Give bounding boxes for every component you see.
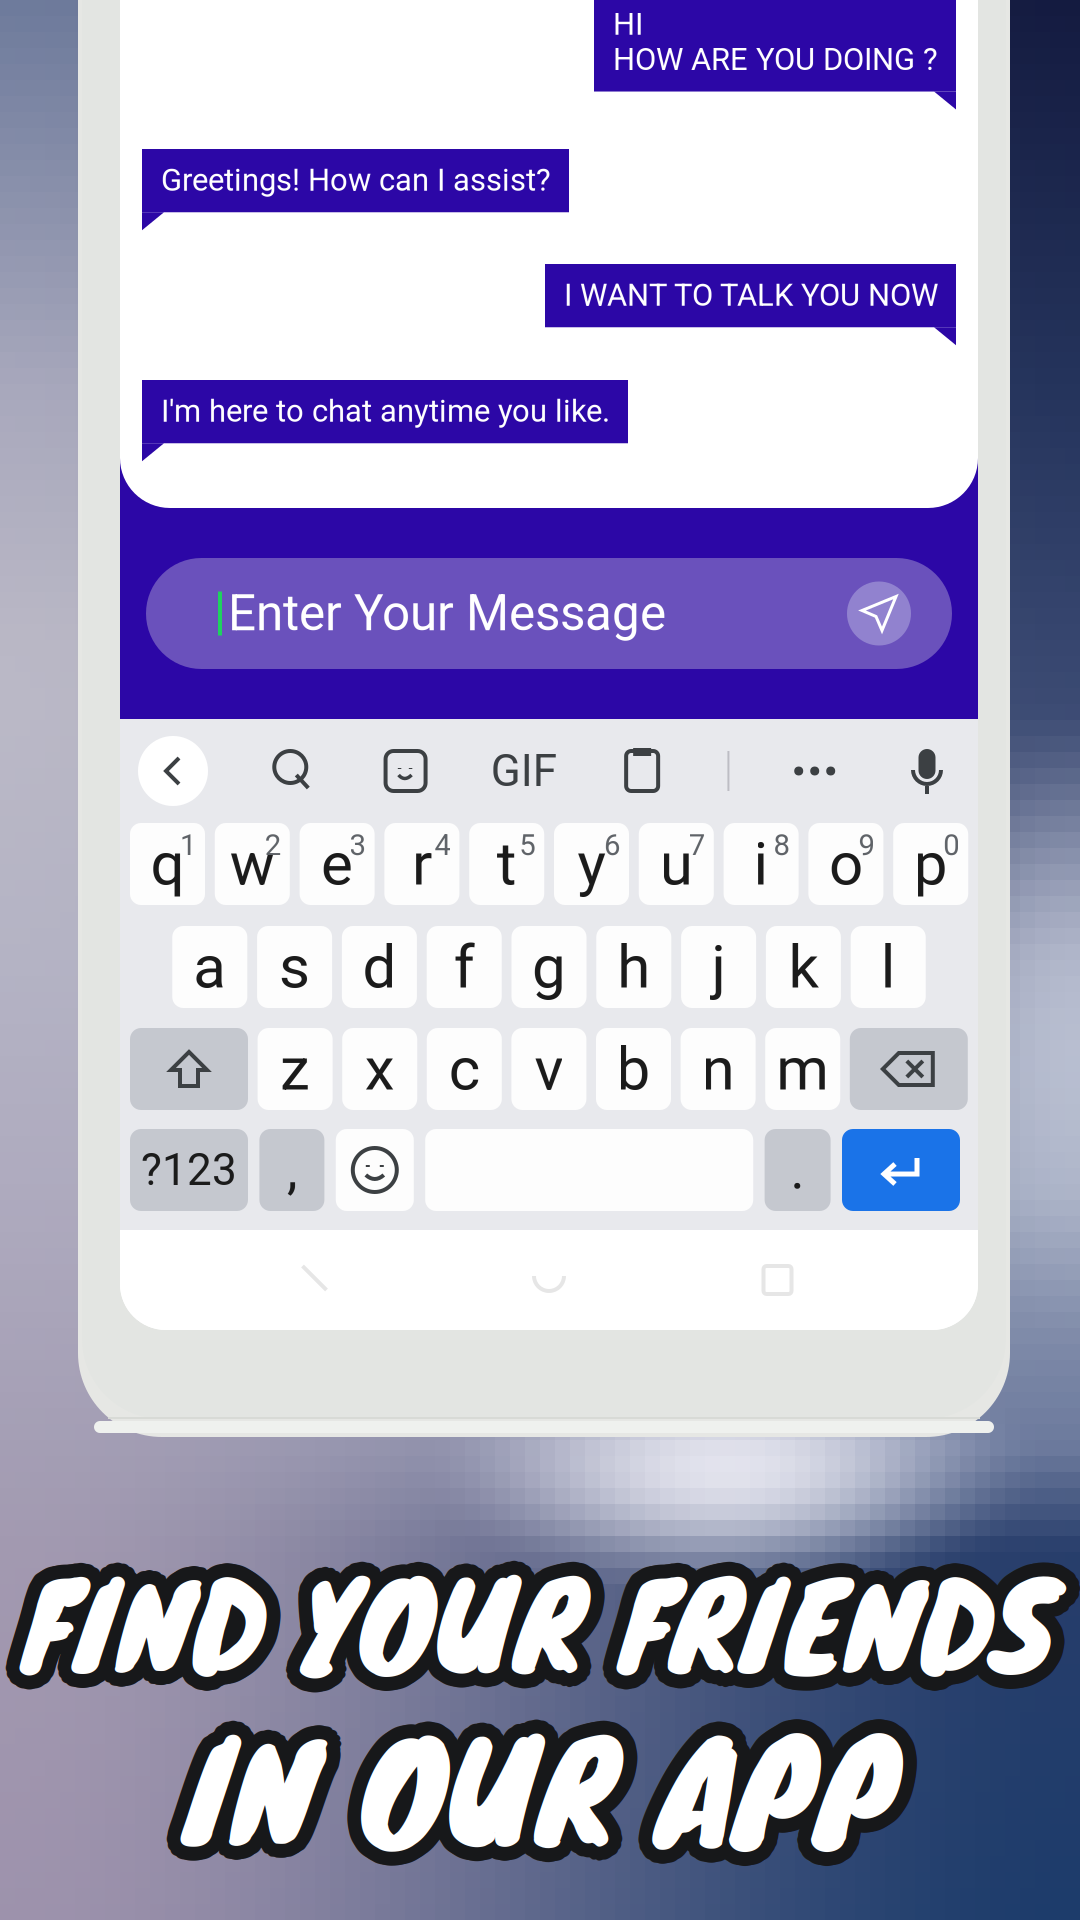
staticText: t	[497, 829, 517, 899]
staticText: GIF	[491, 745, 557, 797]
button[interactable]: o	[808, 823, 883, 905]
staticText: FIND YOUR FRIENDS	[16, 1528, 1049, 1712]
staticText: IN OUR APP	[177, 1679, 891, 1888]
staticText: IN OUR APP	[175, 1685, 889, 1894]
staticText: FIND YOUR FRIENDS	[23, 1515, 1056, 1700]
button[interactable]: Period	[765, 1129, 831, 1211]
button[interactable]: Emoji	[336, 1129, 414, 1211]
staticText: FIND YOUR FRIENDS	[23, 1543, 1056, 1728]
button[interactable]: Enter Your Message	[146, 558, 952, 669]
button[interactable]: Back	[292, 1252, 348, 1308]
staticText: 7	[689, 828, 705, 862]
staticText: FIND YOUR FRIENDS	[31, 1528, 1064, 1712]
staticText: Greetings! How can I assist?	[161, 162, 551, 198]
button[interactable]: p	[893, 823, 968, 905]
button[interactable]: e	[300, 823, 375, 905]
staticText: IN OUR APP	[189, 1679, 903, 1888]
button[interactable]: Voice input	[900, 744, 954, 798]
staticText: IN OUR APP	[197, 1683, 911, 1893]
button[interactable]: Stickers	[379, 744, 433, 798]
staticText: IN OUR APP	[187, 1677, 901, 1886]
staticText: c	[449, 1034, 480, 1104]
button[interactable]: Backspace	[850, 1028, 968, 1110]
staticText: FIND YOUR FRIENDS	[36, 1524, 1069, 1708]
button[interactable]: Enter	[842, 1129, 960, 1211]
button[interactable]: Recents	[749, 1252, 805, 1308]
staticText: IN OUR APP	[196, 1689, 910, 1898]
staticText: IN OUR APP	[191, 1685, 905, 1894]
staticText: IN OUR APP	[187, 1690, 901, 1899]
staticText: FIND YOUR FRIENDS	[28, 1536, 1061, 1720]
button[interactable]: n	[681, 1028, 756, 1110]
button[interactable]: t	[469, 823, 544, 905]
button[interactable]: j	[681, 926, 756, 1008]
staticText: IN OUR APP	[189, 1688, 903, 1897]
staticText: IN OUR APP	[183, 1697, 897, 1907]
staticText: 8	[774, 828, 790, 862]
staticText: n	[702, 1034, 735, 1104]
staticText: s	[279, 932, 310, 1002]
button[interactable]: u	[639, 823, 714, 905]
button[interactable]: q	[130, 823, 205, 905]
button[interactable]: i	[724, 823, 799, 905]
staticText: FIND YOUR FRIENDS	[28, 1523, 1061, 1707]
staticText: 1	[180, 828, 196, 862]
staticText: IN OUR APP	[188, 1696, 902, 1906]
staticText: 3	[350, 828, 366, 862]
staticText: 5	[519, 828, 535, 862]
staticText: FIND YOUR FRIENDS	[16, 1531, 1049, 1715]
staticText: o	[829, 829, 863, 899]
button[interactable]: Clipboard	[615, 744, 669, 798]
button[interactable]: b	[596, 1028, 671, 1110]
staticText: FIND YOUR FRIENDS	[10, 1529, 1043, 1714]
button[interactable]: c	[427, 1028, 502, 1110]
button[interactable]: Numbers	[130, 1129, 248, 1211]
button[interactable]: x	[342, 1028, 417, 1110]
staticText: r	[412, 829, 432, 899]
staticText: FIND YOUR FRIENDS	[25, 1537, 1058, 1721]
staticText: HI	[613, 6, 643, 42]
staticText: FIND YOUR FRIENDS	[11, 1535, 1044, 1719]
staticText: IN OUR APP	[184, 1676, 898, 1885]
button[interactable]: More	[788, 744, 842, 798]
button[interactable]: g	[511, 926, 586, 1008]
staticText: FIND YOUR FRIENDS	[22, 1522, 1055, 1706]
button[interactable]: f	[427, 926, 502, 1008]
staticText: FIND YOUR FRIENDS	[14, 1539, 1047, 1724]
button[interactable]: Close keyboard	[138, 736, 208, 806]
staticText: FIND YOUR FRIENDS	[29, 1542, 1062, 1727]
staticText: .	[791, 1139, 805, 1201]
button[interactable]: v	[511, 1028, 586, 1110]
staticText: IN OUR APP	[169, 1683, 883, 1893]
staticText: 2	[265, 828, 281, 862]
button[interactable]: d	[342, 926, 417, 1008]
button[interactable]: h	[596, 926, 671, 1008]
button[interactable]: s	[257, 926, 332, 1008]
button[interactable]: Shift	[130, 1028, 248, 1110]
button[interactable]: GIF	[491, 745, 557, 797]
staticText: FIND YOUR FRIENDS	[23, 1529, 1056, 1714]
staticText: IN OUR APP	[177, 1688, 891, 1897]
button[interactable]: a	[172, 926, 247, 1008]
button[interactable]: y	[554, 823, 629, 905]
button[interactable]: m	[765, 1028, 840, 1110]
button[interactable]: r	[384, 823, 459, 905]
staticText: IN OUR APP	[173, 1693, 887, 1903]
button[interactable]: Comma	[259, 1129, 324, 1211]
button[interactable]: Search	[266, 744, 320, 798]
staticText: FIND YOUR FRIENDS	[33, 1539, 1066, 1724]
button[interactable]: w	[215, 823, 290, 905]
staticText: m	[776, 1034, 829, 1104]
staticText: ?123	[141, 1144, 237, 1196]
staticText: IN OUR APP	[175, 1682, 889, 1891]
button[interactable]: z	[258, 1028, 333, 1110]
staticText: IN OUR APP	[179, 1677, 893, 1886]
staticText: q	[150, 829, 184, 899]
staticText: IN OUR APP	[181, 1691, 895, 1900]
staticText: b	[616, 1034, 650, 1104]
button[interactable]: k	[766, 926, 841, 1008]
staticText: h	[617, 932, 650, 1002]
button[interactable]: l	[851, 926, 926, 1008]
button[interactable]: Home	[521, 1252, 577, 1308]
